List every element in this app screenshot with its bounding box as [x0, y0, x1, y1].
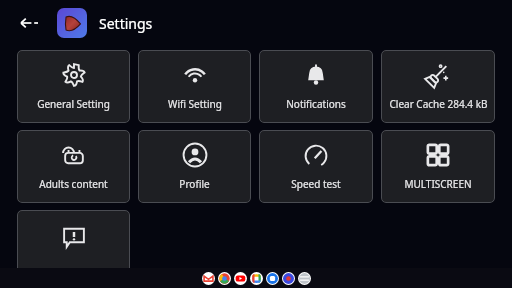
button[interactable]: Speed test — [259, 130, 373, 203]
button[interactable]: Gmail — [202, 272, 215, 285]
button[interactable]: Grey — [298, 272, 311, 285]
button[interactable]: Photos — [250, 272, 263, 285]
button[interactable]: BlueRing — [282, 272, 295, 285]
staticText: MULTISCREEN — [404, 177, 472, 191]
staticText: Speed test — [291, 177, 341, 191]
button[interactable]: Notifications — [259, 50, 373, 123]
button[interactable]: Back — [16, 10, 42, 36]
staticText: Adults content — [39, 177, 108, 191]
staticText: Wifi Setting — [168, 97, 222, 111]
button[interactable]: Chrome — [218, 272, 231, 285]
staticText: Clear Cache 284.4 kB — [389, 97, 488, 111]
button[interactable]: Clear Cache 284.4 kB — [381, 50, 495, 123]
button[interactable]: App icon — [57, 8, 87, 38]
button[interactable]: MULTISCREEN — [381, 130, 495, 203]
button[interactable]: Feedback — [17, 210, 130, 283]
staticText: Notifications — [286, 97, 346, 111]
button[interactable]: BlueSquare — [266, 272, 279, 285]
button[interactable]: YouTube — [234, 272, 247, 285]
staticText: Settings — [99, 14, 153, 33]
staticText: Profile — [179, 177, 210, 191]
button[interactable]: Wifi Setting — [138, 50, 251, 123]
staticText: General Setting — [37, 97, 110, 111]
button[interactable]: Adults content — [17, 130, 130, 203]
button[interactable]: General Setting — [17, 50, 130, 123]
button[interactable]: Profile — [138, 130, 251, 203]
